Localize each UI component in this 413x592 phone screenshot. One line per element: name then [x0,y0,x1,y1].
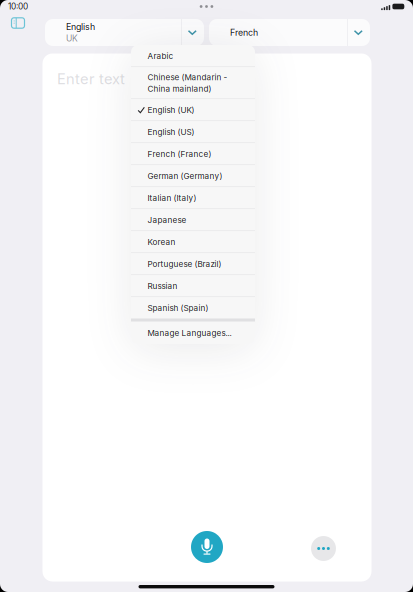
button[interactable]: Korean [131,231,255,253]
staticText: Portuguese (Brazil) [147,259,221,269]
staticText: Chinese (Mandarin - [147,72,227,82]
button[interactable]: Arabic [131,45,255,67]
button[interactable]: English [45,19,204,46]
button[interactable]: French [209,19,370,46]
staticText: 10:00 [8,1,28,11]
button[interactable]: Toggle Sidebar [6,13,30,33]
staticText: French [230,27,258,38]
staticText: Arabic [147,51,173,61]
button[interactable]: More [311,536,336,561]
staticText: China mainland) [147,84,211,94]
staticText: UK [66,33,78,43]
button[interactable]: Chinese (Mandarin - [131,67,255,99]
staticText: English [66,21,95,32]
button[interactable]: Manage Languages... [131,322,255,344]
staticText: German (Germany) [147,171,222,181]
button[interactable]: Japanese [131,209,255,231]
staticText: Manage Languages... [147,328,231,338]
staticText: Enter text [57,70,125,88]
button[interactable]: Russian [131,275,255,297]
button[interactable]: English (UK) [131,99,255,121]
button[interactable]: Start Listening [191,531,223,563]
staticText: English (US) [147,127,194,137]
button[interactable]: Spanish (Spain) [131,297,255,319]
button[interactable]: French (France) [131,143,255,165]
button[interactable]: English (US) [131,121,255,143]
button[interactable]: Italian (Italy) [131,187,255,209]
staticText: Russian [147,281,177,291]
staticText: English (UK) [147,105,194,115]
button[interactable]: German (Germany) [131,165,255,187]
staticText: Spanish (Spain) [147,303,208,313]
staticText: Korean [147,237,175,247]
staticText: Japanese [147,215,186,225]
button[interactable]: Portuguese (Brazil) [131,253,255,275]
staticText: French (France) [147,149,211,159]
staticText: Italian (Italy) [147,193,196,203]
